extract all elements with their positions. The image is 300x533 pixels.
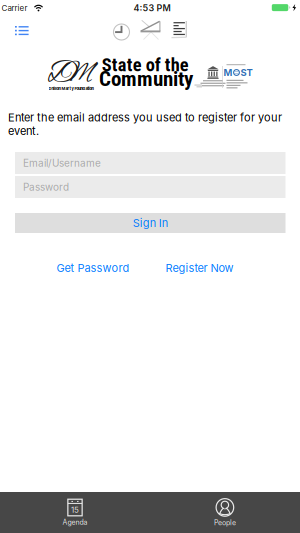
staticText: Carrier bbox=[1, 3, 27, 13]
button[interactable]: Email/Username bbox=[15, 152, 285, 174]
staticText: Enter the email address you used to regi… bbox=[8, 111, 282, 124]
button[interactable]: Notes bbox=[171, 21, 187, 39]
staticText: Register Now bbox=[165, 261, 233, 274]
button[interactable]: Sign In bbox=[15, 213, 285, 233]
button[interactable]: Password bbox=[15, 176, 285, 198]
staticText: Community bbox=[99, 66, 193, 91]
staticText: ST bbox=[240, 67, 252, 78]
button[interactable]: 15 bbox=[0, 498, 150, 526]
button[interactable]: Register Now bbox=[165, 261, 233, 274]
staticText: 15 bbox=[71, 505, 79, 515]
staticText: event. bbox=[8, 124, 39, 137]
staticText: People bbox=[214, 518, 236, 527]
staticText: D bbox=[47, 53, 77, 94]
button[interactable]: Menu bbox=[15, 25, 29, 37]
staticText: State of the bbox=[102, 54, 189, 76]
staticText: Sign In bbox=[133, 216, 168, 229]
staticText: 4:53 PM bbox=[133, 3, 170, 13]
button[interactable]: Mail bbox=[139, 20, 161, 42]
button[interactable]: Get Password bbox=[56, 261, 129, 274]
staticText: Agenda bbox=[62, 518, 87, 526]
staticText: Password bbox=[23, 181, 69, 193]
button[interactable]: People bbox=[150, 498, 300, 527]
staticText: Get Password bbox=[56, 261, 129, 274]
button[interactable]: History bbox=[112, 23, 130, 41]
staticText: M bbox=[223, 67, 232, 78]
staticText: M bbox=[60, 56, 93, 92]
staticText: Dhillon Marty Foundation bbox=[48, 86, 93, 91]
staticText: Email/Username bbox=[23, 157, 101, 169]
